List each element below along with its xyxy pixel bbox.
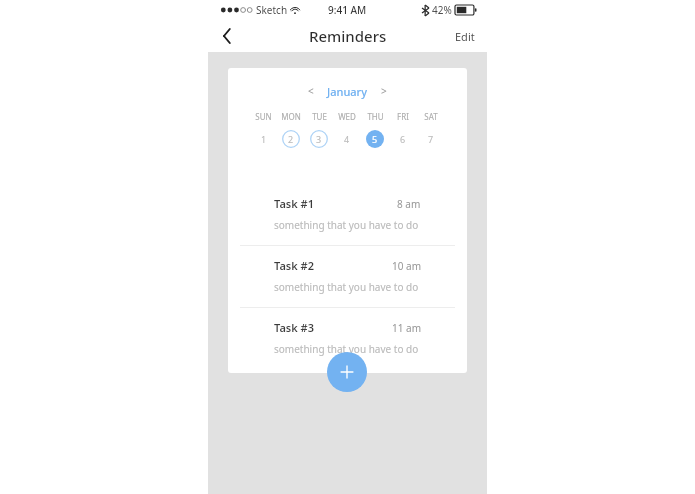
staticText: Task #1 [274, 196, 314, 211]
staticText: something that you have to do [274, 280, 419, 294]
staticText: Task #2 [274, 258, 314, 273]
staticText: FRI [397, 111, 409, 122]
button[interactable]: 3 [310, 130, 328, 148]
staticText: 1 [261, 133, 267, 145]
staticText: 6 [400, 133, 406, 145]
staticText: 8 am [397, 197, 421, 211]
button[interactable]: Back [214, 23, 240, 49]
staticText: Sketch [256, 3, 288, 17]
staticText: January [327, 84, 368, 99]
staticText: 42% [432, 3, 452, 17]
button[interactable]: 6 [394, 130, 412, 148]
button[interactable]: 2 [282, 130, 300, 148]
staticText: 10 am [392, 259, 421, 273]
staticText: 5 [372, 133, 378, 145]
staticText: SUN [255, 111, 272, 122]
staticText: Edit [455, 29, 475, 44]
staticText: MON [281, 111, 301, 122]
staticText: 4 [344, 133, 350, 145]
staticText: > [381, 84, 387, 98]
staticText: < [308, 84, 314, 98]
button[interactable]: Task #3 [228, 308, 467, 369]
button[interactable]: 4 [338, 130, 356, 148]
staticText: 7 [428, 133, 434, 145]
button[interactable]: Task #2 [228, 246, 467, 307]
staticText: something that you have to do [274, 342, 419, 356]
staticText: 3 [316, 133, 322, 145]
staticText: 11 am [392, 321, 421, 335]
button[interactable]: 5 [366, 130, 384, 148]
staticText: Reminders [309, 26, 387, 46]
staticText: Task #3 [274, 320, 314, 335]
staticText: SAT [424, 111, 438, 122]
button[interactable]: Previous month [303, 83, 319, 99]
button[interactable]: 1 [255, 130, 273, 148]
button[interactable]: 7 [422, 130, 440, 148]
button[interactable]: Task #1 [228, 184, 467, 245]
staticText: TUE [312, 111, 327, 122]
button[interactable]: Add reminder [327, 352, 367, 392]
staticText: 2 [288, 133, 294, 145]
staticText: THU [367, 111, 384, 122]
button[interactable]: January [327, 84, 368, 99]
button[interactable]: Edit [451, 25, 479, 48]
staticText: something that you have to do [274, 218, 419, 232]
button[interactable]: Next month [376, 83, 392, 99]
staticText: 9:41 AM [328, 3, 367, 17]
staticText: WED [338, 111, 356, 122]
